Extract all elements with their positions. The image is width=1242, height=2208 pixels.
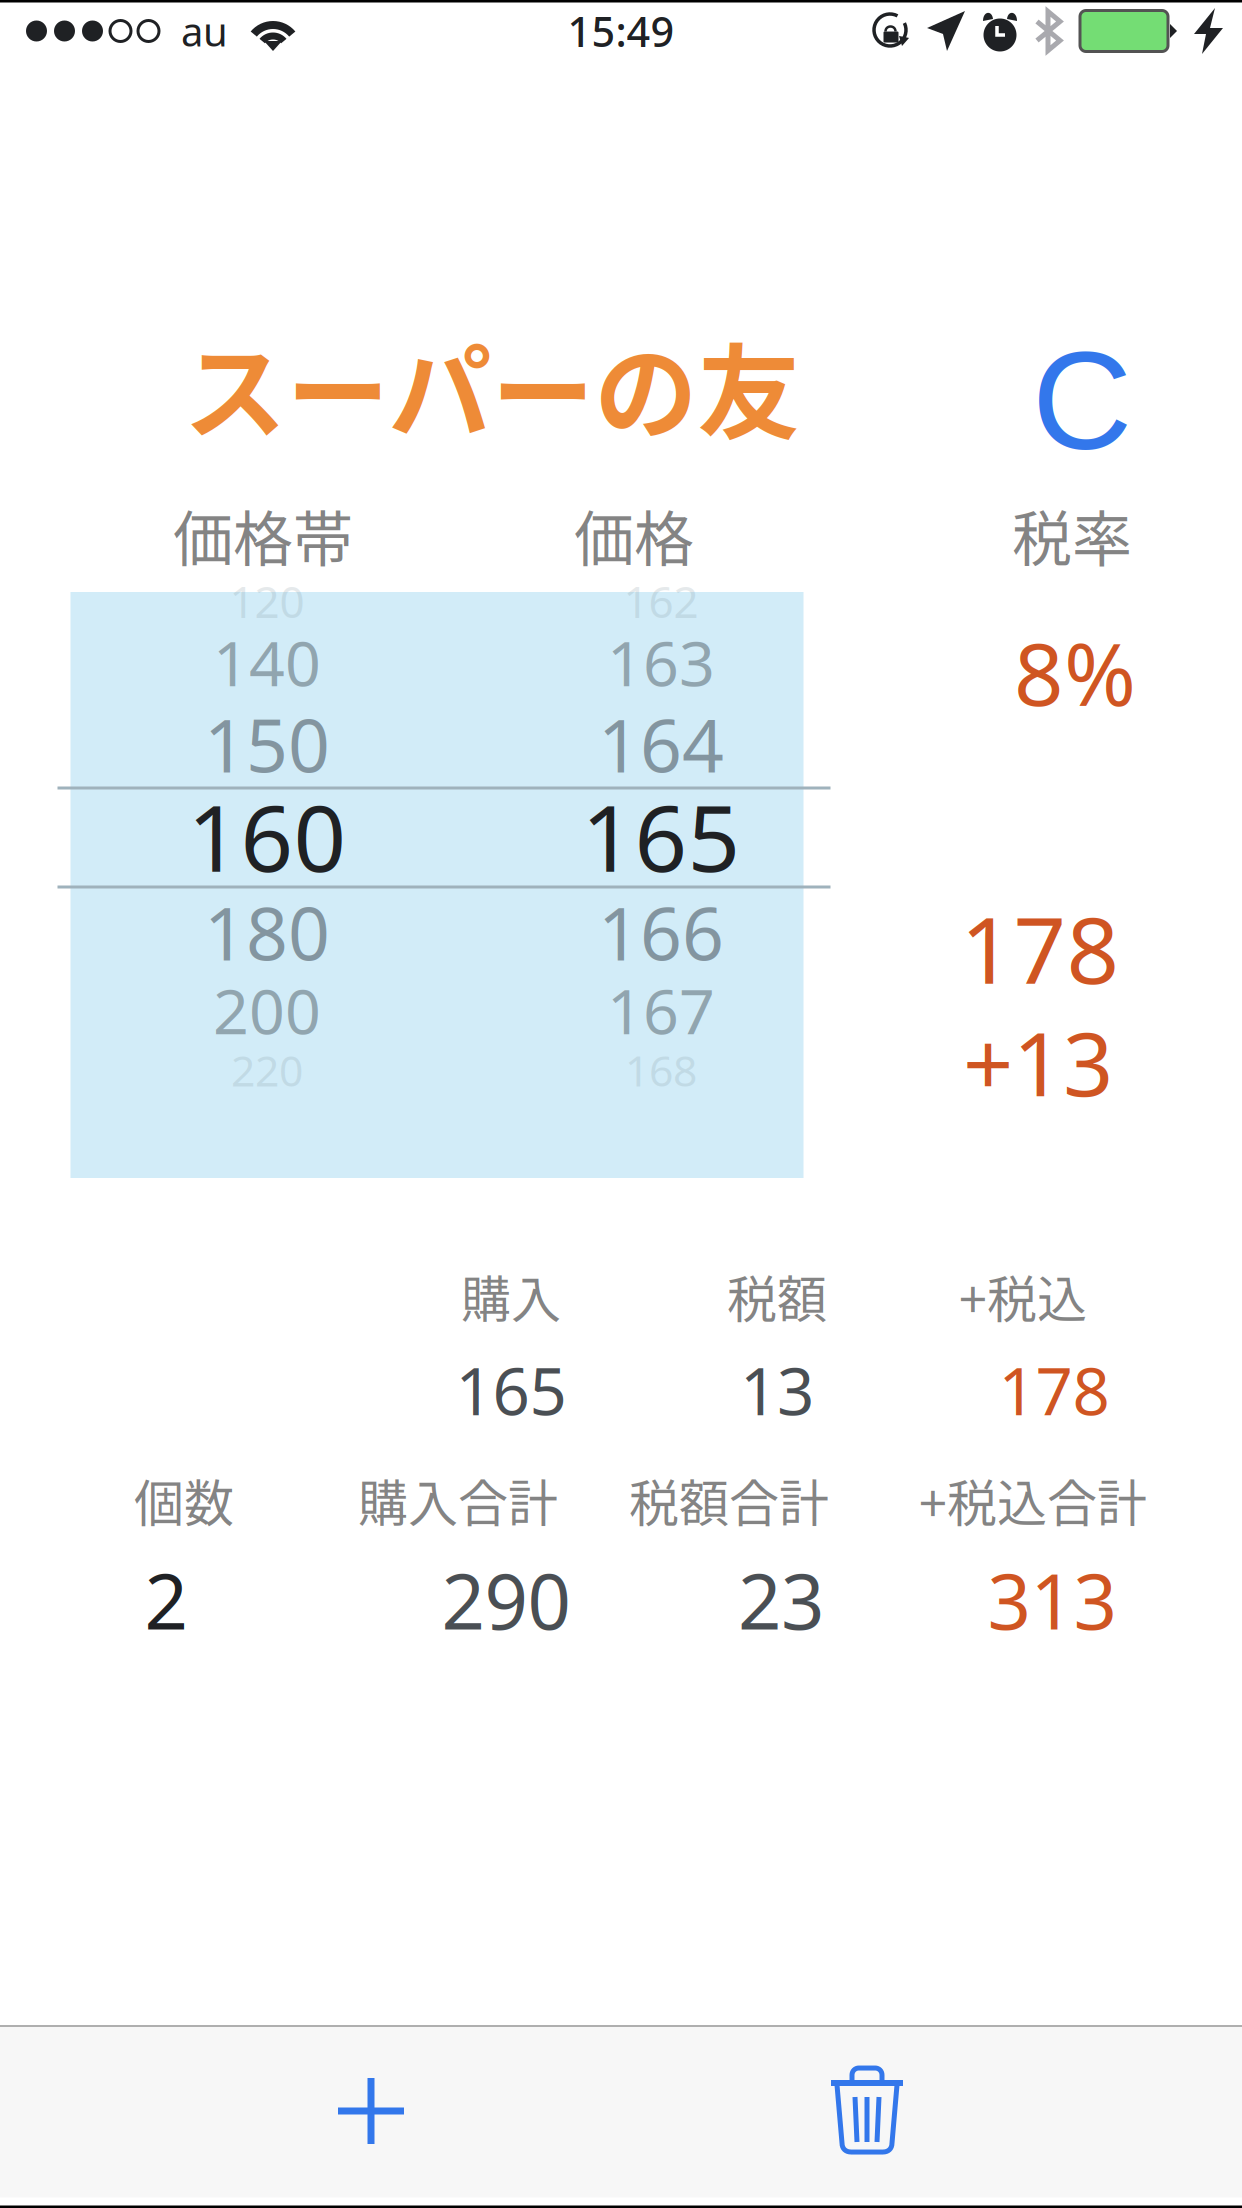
staticText: 税額	[727, 1260, 827, 1332]
staticText: 160	[187, 775, 346, 897]
staticText: 168	[625, 1042, 697, 1098]
staticText: 2	[144, 1549, 187, 1650]
staticText: +税込合計	[919, 1464, 1147, 1536]
button[interactable]: Add item	[456, 1018, 786, 1189]
staticText: 税率	[1012, 492, 1132, 578]
staticText: 13	[740, 1347, 814, 1433]
staticText: 購入	[461, 1260, 561, 1332]
staticText: 290	[441, 1549, 570, 1650]
staticText: 23	[738, 1549, 824, 1650]
staticText: 178	[998, 1347, 1109, 1433]
staticText: +税込	[959, 1260, 1087, 1332]
staticText: 166	[598, 883, 724, 981]
staticText: 8%	[1014, 614, 1136, 730]
staticText: C	[1032, 323, 1132, 478]
staticText: 220	[231, 1042, 303, 1098]
staticText: 165	[581, 775, 740, 897]
staticText: スーパーの友	[183, 311, 800, 460]
staticText: 購入合計	[358, 1464, 558, 1536]
staticText: 200	[213, 968, 321, 1052]
staticText: au	[181, 4, 228, 57]
staticText: 167	[607, 968, 715, 1052]
staticText: +13	[963, 1004, 1113, 1120]
staticText: 178	[960, 887, 1119, 1009]
staticText: 15:49	[567, 4, 674, 58]
staticText: 164	[598, 695, 724, 793]
staticText: 価格	[574, 492, 694, 578]
staticText: 140	[213, 620, 321, 704]
staticText: 165	[455, 1347, 566, 1433]
staticText: 162	[623, 572, 698, 630]
staticText: 120	[229, 572, 304, 630]
button[interactable]: Clear all	[456, 1018, 786, 1189]
staticText: 163	[607, 620, 715, 704]
staticText: 個数	[134, 1464, 234, 1536]
staticText: 税額合計	[629, 1464, 829, 1536]
staticText: 180	[204, 883, 330, 981]
button[interactable]: Clear	[521, 1029, 721, 1179]
staticText: 313	[987, 1549, 1116, 1650]
staticText: 価格帯	[173, 492, 353, 578]
staticText: 150	[204, 695, 330, 793]
